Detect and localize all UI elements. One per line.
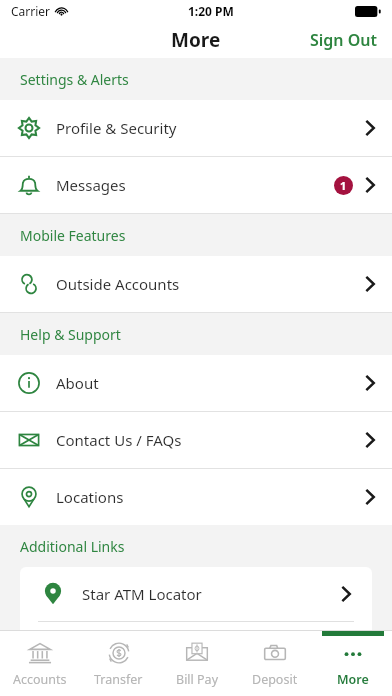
- button[interactable]: Deposit: [236, 631, 314, 696]
- staticText: Sign Out: [310, 29, 378, 51]
- button[interactable]: Messages: [0, 157, 392, 213]
- button[interactable]: More: [314, 631, 392, 696]
- staticText: 1: [340, 178, 347, 193]
- button[interactable]: Bill Pay: [158, 631, 236, 696]
- button[interactable]: Sign Out: [296, 22, 392, 58]
- button[interactable]: Contact Us / FAQs: [0, 412, 392, 468]
- staticText: Star ATM Locator: [82, 584, 202, 604]
- button[interactable]: Accounts: [0, 631, 79, 696]
- staticText: 1:20 PM: [188, 3, 234, 19]
- button[interactable]: Star ATM Locator: [20, 567, 372, 621]
- staticText: Contact Us / FAQs: [56, 430, 182, 450]
- staticText: Mobile Features: [20, 226, 126, 245]
- staticText: Help & Support: [20, 325, 121, 344]
- button[interactable]: Profile & Security: [0, 100, 392, 156]
- staticText: About: [56, 373, 99, 393]
- staticText: Additional Links: [20, 537, 125, 556]
- button[interactable]: Transfer: [79, 631, 158, 696]
- staticText: More: [171, 27, 221, 53]
- staticText: Profile & Security: [56, 118, 177, 138]
- staticText: Locations: [56, 487, 124, 507]
- staticText: Deposit: [252, 671, 298, 688]
- staticText: Messages: [56, 175, 126, 195]
- button[interactable]: About: [0, 355, 392, 411]
- staticText: Transfer: [94, 671, 143, 688]
- staticText: Settings & Alerts: [20, 70, 129, 89]
- button[interactable]: Locations: [0, 469, 392, 525]
- staticText: More: [337, 671, 369, 688]
- staticText: Accounts: [13, 671, 67, 688]
- button[interactable]: Outside Accounts: [0, 256, 392, 312]
- staticText: Carrier: [11, 3, 51, 19]
- staticText: Outside Accounts: [56, 274, 180, 294]
- staticText: Bill Pay: [176, 671, 219, 688]
